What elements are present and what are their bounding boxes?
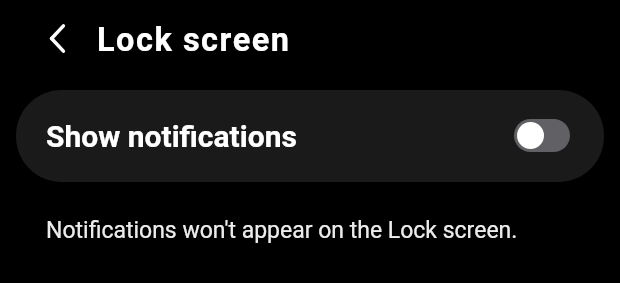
button[interactable]: Back xyxy=(34,13,86,65)
button[interactable]: Show notifications switch, off xyxy=(514,119,570,152)
staticText: Show notifications xyxy=(46,119,297,154)
button[interactable]: Show notifications xyxy=(16,90,604,182)
staticText: Lock screen xyxy=(97,21,291,59)
staticText: Notifications won't appear on the Lock s… xyxy=(46,217,518,244)
